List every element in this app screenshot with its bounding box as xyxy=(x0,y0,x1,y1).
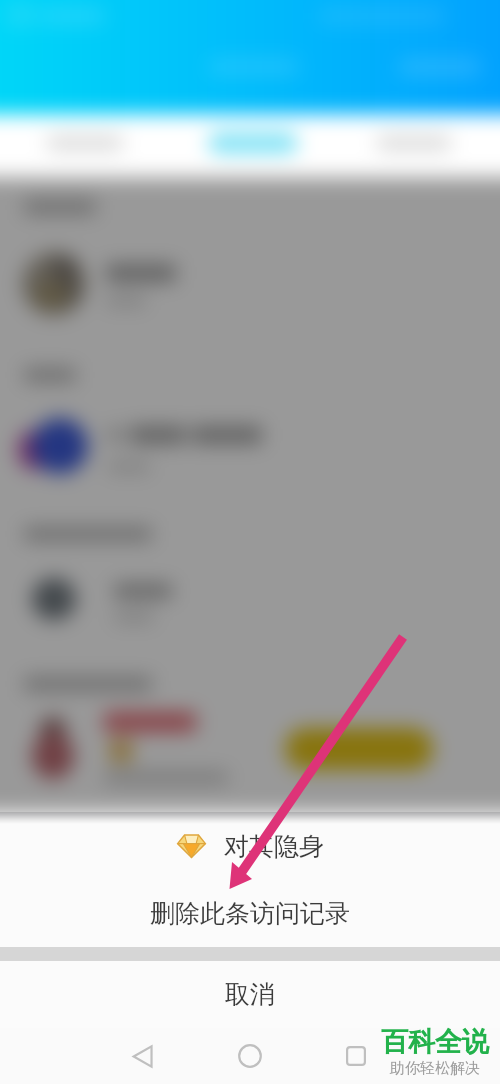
staticText: 取消 xyxy=(225,979,275,1010)
button[interactable]: 对其隐身 xyxy=(0,812,500,880)
staticText: 对其隐身 xyxy=(224,831,324,862)
staticText: 百科全说 xyxy=(381,1025,489,1059)
button[interactable]: Home xyxy=(222,1028,278,1084)
button[interactable]: 取消 xyxy=(0,961,500,1028)
staticText: 删除此条访问记录 xyxy=(150,898,350,929)
button[interactable]: 删除此条访问记录 xyxy=(0,880,500,947)
button[interactable]: Back xyxy=(114,1028,170,1084)
staticText: 助你轻松解决 xyxy=(390,1059,480,1078)
button[interactable]: Recents xyxy=(328,1028,384,1084)
